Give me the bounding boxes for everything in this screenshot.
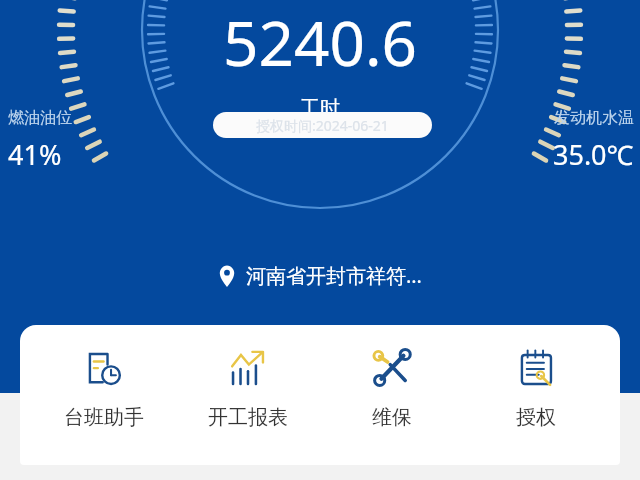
staticText: 授权	[516, 405, 556, 430]
button[interactable]: 维保	[332, 325, 452, 430]
button[interactable]: 河南省开封市祥符…	[0, 262, 640, 289]
button[interactable]: 台班助手	[44, 325, 164, 430]
staticText: 台班助手	[64, 405, 144, 430]
staticText: 工时	[300, 96, 340, 121]
staticText: 发动机水温	[554, 108, 634, 128]
staticText: 燃油油位	[8, 108, 72, 128]
staticText: 开工报表	[208, 405, 288, 430]
staticText: 维保	[372, 405, 412, 430]
staticText: 5240.6	[223, 0, 417, 84]
button[interactable]: 授权	[476, 325, 596, 430]
button[interactable]: 开工报表	[188, 325, 308, 430]
staticText: 35.0℃	[553, 136, 634, 173]
staticText: 41%	[8, 136, 62, 173]
staticText: 授权时间:2024-06-21	[256, 116, 389, 135]
staticText: 河南省开封市祥符…	[246, 262, 422, 289]
